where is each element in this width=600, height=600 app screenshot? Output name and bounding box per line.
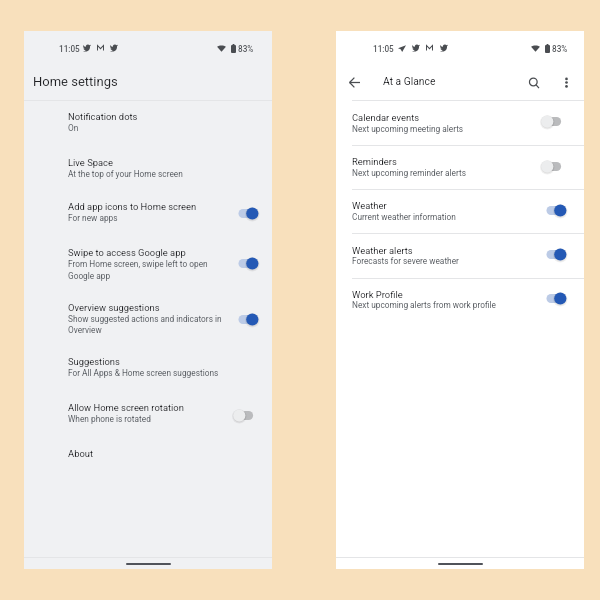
- button[interactable]: [336, 278, 584, 322]
- button[interactable]: Switch on: [232, 311, 260, 328]
- button[interactable]: [336, 189, 584, 233]
- button[interactable]: [24, 240, 272, 294]
- staticText: About: [68, 448, 94, 459]
- staticText: 83%: [552, 44, 568, 54]
- staticText: Next upcoming reminder alerts: [352, 168, 467, 178]
- staticText: Calendar events: [352, 112, 420, 123]
- button[interactable]: Switch off: [540, 158, 568, 175]
- button[interactable]: Search: [523, 72, 545, 94]
- staticText: On: [68, 123, 79, 133]
- staticText: Allow Home screen rotation: [68, 402, 184, 413]
- button[interactable]: [24, 441, 272, 487]
- button[interactable]: [24, 194, 272, 240]
- staticText: Suggestions: [68, 356, 120, 367]
- button[interactable]: Back: [343, 71, 365, 93]
- staticText: Add app icons to Home screen: [68, 201, 197, 212]
- button[interactable]: Switch off: [232, 407, 260, 424]
- staticText: Next upcoming meeting alerts: [352, 124, 464, 134]
- staticText: Weather: [352, 200, 387, 211]
- button[interactable]: Switch on: [540, 202, 568, 219]
- button[interactable]: Switch on: [232, 205, 260, 222]
- button[interactable]: [336, 145, 584, 189]
- button[interactable]: More options: [556, 71, 576, 93]
- button[interactable]: [24, 394, 272, 440]
- staticText: Overview: [68, 325, 102, 335]
- staticText: Live Space: [68, 157, 113, 168]
- button[interactable]: Switch on: [232, 255, 260, 272]
- staticText: Weather alerts: [352, 245, 413, 256]
- staticText: Swipe to access Google app: [68, 247, 186, 258]
- staticText: Current weather information: [352, 212, 456, 222]
- staticText: From Home screen, swipe left to open: [68, 259, 208, 269]
- staticText: At the top of your Home screen: [68, 169, 183, 179]
- staticText: 83%: [238, 44, 254, 54]
- button[interactable]: [336, 101, 584, 145]
- button[interactable]: [24, 295, 272, 349]
- staticText: 11:05: [59, 44, 80, 54]
- staticText: Show suggested actions and indicators in: [68, 314, 222, 324]
- staticText: For new apps: [68, 213, 118, 223]
- staticText: When phone is rotated: [68, 414, 151, 424]
- staticText: Reminders: [352, 156, 397, 167]
- button[interactable]: [336, 233, 584, 277]
- staticText: Next upcoming alerts from work profile: [352, 300, 496, 310]
- staticText: For All Apps & Home screen suggestions: [68, 368, 219, 378]
- button[interactable]: [24, 149, 272, 195]
- staticText: Google app: [68, 271, 111, 281]
- staticText: Notification dots: [68, 111, 138, 122]
- staticText: At a Glance: [383, 75, 436, 87]
- button[interactable]: [24, 348, 272, 394]
- button[interactable]: [24, 104, 272, 150]
- button[interactable]: Switch off: [540, 113, 568, 130]
- staticText: Work Profile: [352, 289, 403, 300]
- staticText: Home settings: [33, 74, 118, 89]
- staticText: Forecasts for severe weather: [352, 256, 459, 266]
- button[interactable]: Switch on: [540, 290, 568, 307]
- staticText: Overview suggestions: [68, 302, 160, 313]
- staticText: 11:05: [373, 44, 394, 54]
- button[interactable]: Switch on: [540, 246, 568, 263]
